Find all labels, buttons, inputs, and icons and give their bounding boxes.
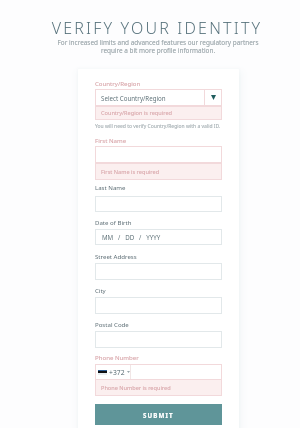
staticText: First Name is required	[101, 168, 160, 176]
button[interactable]: Select Country/Region	[95, 89, 222, 106]
staticText: City	[95, 286, 106, 294]
staticText: Phone Number is required	[101, 384, 171, 392]
staticText: First Name	[95, 136, 127, 144]
button[interactable]	[95, 146, 222, 163]
staticText: Select Country/Region	[101, 94, 166, 102]
staticText: Country/Region	[95, 79, 141, 87]
staticText: VERIFY YOUR IDENTITY	[7, 17, 300, 39]
staticText: MM / DD / YYYY	[102, 233, 161, 241]
staticText: Street Address	[95, 252, 137, 260]
button[interactable]: SUBMIT	[95, 404, 222, 425]
other: Select country calling code	[95, 364, 130, 380]
staticText: For increased limits and advanced featur…	[8, 38, 300, 55]
button[interactable]	[95, 263, 222, 280]
button[interactable]	[95, 331, 222, 348]
staticText: Date of Birth	[95, 218, 132, 226]
button[interactable]: Select country calling code	[95, 364, 222, 380]
button[interactable]	[95, 297, 222, 314]
staticText: Last Name	[95, 183, 126, 191]
staticText: Country/Region is required	[101, 109, 172, 117]
other: Open country list	[205, 89, 222, 106]
button[interactable]: MM / DD / YYYY	[102, 229, 215, 245]
button[interactable]	[95, 196, 222, 212]
staticText: SUBMIT	[143, 411, 174, 419]
staticText: +372	[109, 368, 125, 377]
staticText: You will need to verify Country/Region w…	[95, 123, 221, 130]
staticText: Phone Number	[95, 353, 139, 361]
staticText: Postal Code	[95, 320, 129, 328]
